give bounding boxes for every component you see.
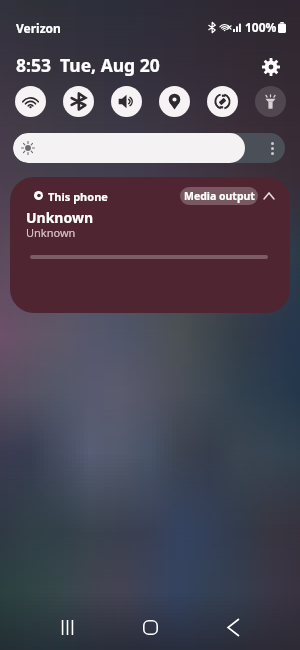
button[interactable]: Flashlight xyxy=(255,86,286,117)
button[interactable]: Recents xyxy=(45,605,89,649)
button[interactable]: This phone xyxy=(10,177,290,313)
button[interactable]: Wi-Fi xyxy=(15,86,46,117)
staticText: 8:53 Tue, Aug 20 xyxy=(16,53,160,77)
button[interactable]: Sound xyxy=(111,86,142,117)
button[interactable]: Bluetooth xyxy=(63,86,94,117)
staticText: Unknown xyxy=(26,208,94,227)
button[interactable]: Brightness xyxy=(13,133,285,163)
button[interactable]: Auto rotate xyxy=(207,86,238,117)
button[interactable]: Home xyxy=(128,605,172,649)
staticText: Media output xyxy=(184,189,255,203)
button[interactable]: Settings xyxy=(259,55,283,79)
staticText: 100% xyxy=(245,19,277,35)
button[interactable]: Back xyxy=(211,605,255,649)
staticText: Verizon xyxy=(16,20,61,36)
staticText: This phone xyxy=(48,189,108,204)
staticText: Unknown xyxy=(26,225,76,240)
button[interactable]: Media output xyxy=(180,187,258,205)
button[interactable]: Location xyxy=(159,86,190,117)
button[interactable]: Collapse xyxy=(259,186,279,206)
